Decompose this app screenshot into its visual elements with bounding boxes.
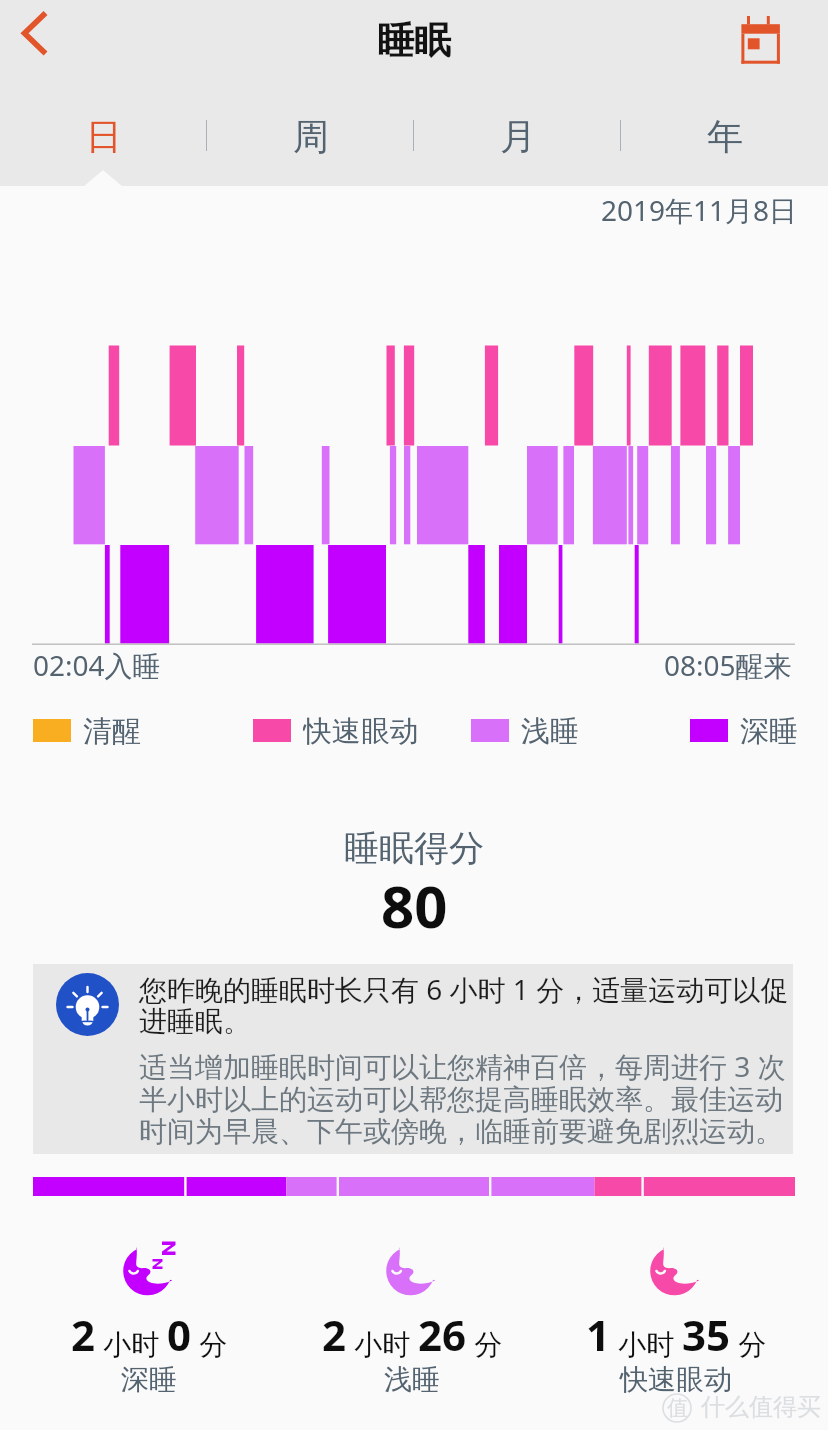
staticText: 小时 [611,1324,682,1362]
staticText: 日 [86,114,122,159]
staticText: 0 [167,1306,192,1363]
staticText: 值 [667,1395,688,1421]
staticText: 小时 [96,1324,167,1362]
button[interactable]: 年 [621,88,828,186]
staticText: 月 [500,114,536,159]
staticText: 深睡 [121,1362,177,1397]
staticText: 分 [467,1324,503,1362]
staticText: 35 [682,1306,731,1363]
button[interactable]: Back [0,0,92,88]
button[interactable]: 1 [526,1241,826,1397]
button[interactable]: 日 [0,88,207,186]
button[interactable]: Calendar [722,0,810,88]
staticText: 适当增加睡眠时间可以让您精神百倍，每周进行 3 次半小时以上的运动可以帮您提高睡… [139,1047,799,1149]
button[interactable]: 2 [262,1241,562,1397]
staticText: 睡眠得分 [344,826,484,870]
button[interactable]: 周 [207,88,414,186]
staticText: 什么值得买 [701,1392,821,1422]
staticText: 02:04入睡 [33,646,161,684]
staticText: 周 [293,114,329,159]
staticText: 年 [707,114,743,159]
staticText: 快速眼动 [620,1362,732,1397]
staticText: 2 [322,1306,347,1363]
staticText: 80 [381,866,448,945]
button[interactable]: 您昨晚的睡眠时长只有 6 小时 1 分，适量运动可以促进睡眠。 [33,964,793,1154]
staticText: 2 [71,1306,96,1363]
button[interactable]: 浅睡 [471,713,579,747]
staticText: 浅睡 [384,1362,440,1397]
staticText: 2019年11月8日 [601,191,798,229]
button[interactable]: 2 [0,1241,299,1397]
staticText: 清醒 [83,713,141,747]
staticText: 深睡 [740,713,798,747]
staticText: 26 [418,1306,467,1363]
button[interactable]: 快速眼动 [253,713,419,747]
staticText: 您昨晚的睡眠时长只有 6 小时 1 分，适量运动可以促进睡眠。 [139,970,799,1039]
button[interactable]: 月 [414,88,621,186]
staticText: 浅睡 [521,713,579,747]
staticText: 快速眼动 [303,713,419,747]
staticText: 1 [586,1306,611,1363]
staticText: 小时 [347,1324,418,1362]
button[interactable]: 清醒 [33,713,141,747]
staticText: 睡眠 [377,17,451,64]
staticText: 分 [731,1324,767,1362]
staticText: 08:05醒来 [664,646,792,684]
staticText: 分 [192,1324,228,1362]
button[interactable]: 深睡 [690,713,798,747]
